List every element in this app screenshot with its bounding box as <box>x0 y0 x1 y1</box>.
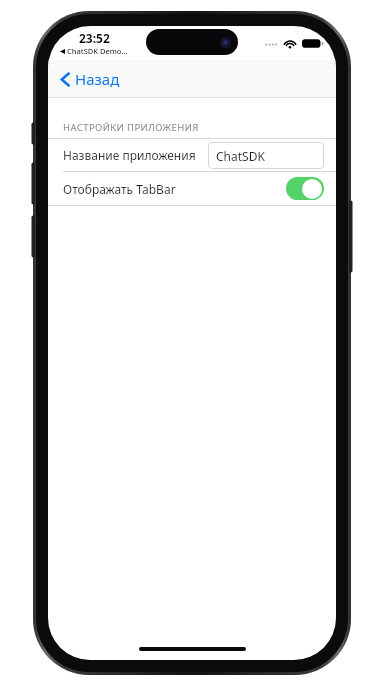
button[interactable]: ChatSDK <box>208 142 324 169</box>
staticText: Отображать TabBar <box>63 181 176 197</box>
staticText: Название приложения <box>63 147 196 163</box>
staticText: Назад <box>75 69 120 89</box>
button[interactable]: Отображать TabBar <box>286 177 324 200</box>
staticText: 23:52 <box>79 30 110 46</box>
button[interactable]: Отображать TabBar <box>48 172 336 205</box>
button[interactable]: Название приложения <box>48 139 336 171</box>
staticText: ChatSDK Demo... <box>67 46 128 56</box>
staticText: ChatSDK <box>216 148 265 164</box>
button[interactable]: Назад <box>54 65 126 93</box>
staticText: НАСТРОЙКИ ПРИЛОЖЕНИЯ <box>63 121 199 134</box>
